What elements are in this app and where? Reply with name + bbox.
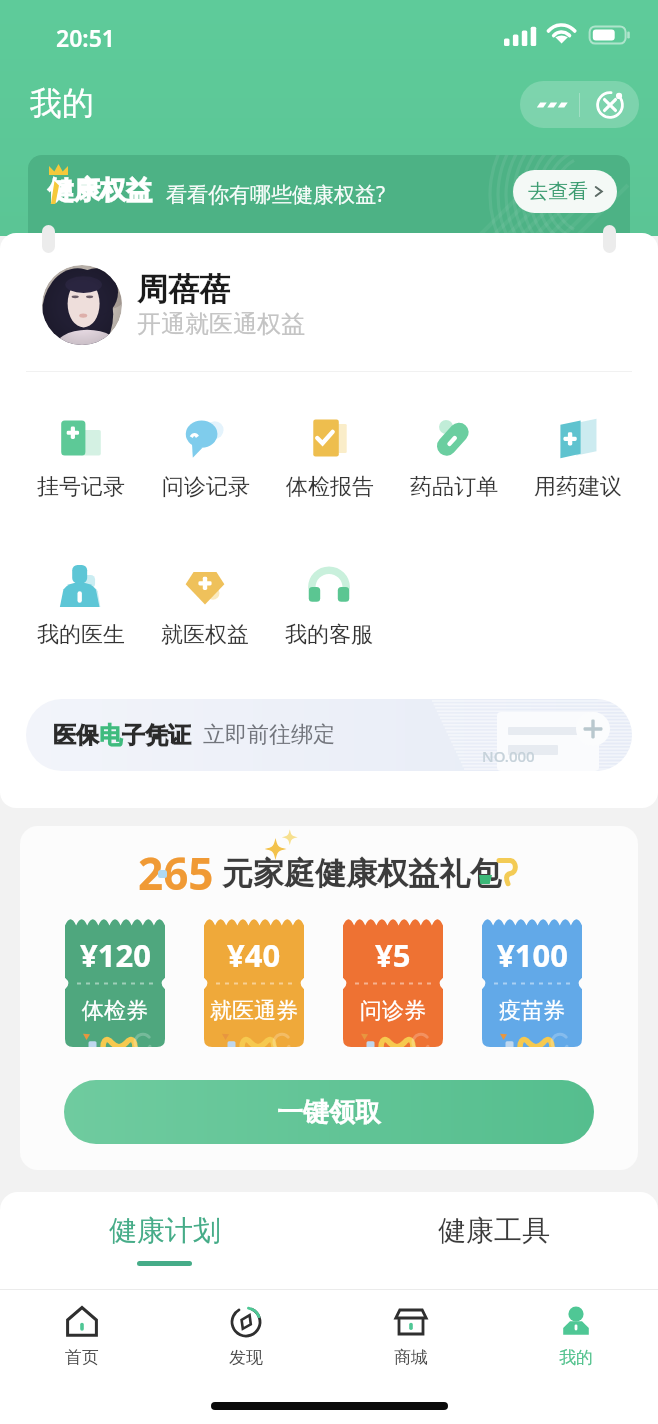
staticText: 周蓓蓓 bbox=[137, 270, 230, 309]
button[interactable]: 去查看 bbox=[528, 170, 607, 213]
staticText: 商城 bbox=[394, 1347, 428, 1368]
button[interactable]: Close mini program bbox=[580, 90, 639, 120]
button[interactable]: 医保 bbox=[26, 699, 632, 771]
staticText: 我的医生 bbox=[37, 621, 125, 649]
staticText: 用药建议 bbox=[534, 473, 622, 501]
staticText: 体检券 bbox=[82, 997, 148, 1025]
staticText: 体检报告 bbox=[286, 473, 374, 501]
button[interactable]: 发现 bbox=[164, 1290, 328, 1386]
button[interactable]: 一键领取 bbox=[64, 1080, 594, 1144]
button[interactable]: 药品订单 bbox=[392, 416, 516, 501]
button[interactable]: 用药建议 bbox=[516, 416, 640, 501]
staticText: 我的 bbox=[30, 83, 94, 123]
button[interactable]: ¥40 bbox=[204, 920, 304, 1047]
staticText: 健康工具 bbox=[438, 1213, 550, 1248]
staticText: 去查看 bbox=[528, 179, 588, 204]
button[interactable]: ¥120 bbox=[65, 920, 165, 1047]
button[interactable]: 健康权益 bbox=[28, 155, 630, 235]
button[interactable]: 商城 bbox=[328, 1290, 493, 1386]
staticText: 开通就医通权益 bbox=[137, 309, 305, 339]
button[interactable]: 健康计划 bbox=[0, 1192, 329, 1289]
staticText: 265 bbox=[138, 843, 214, 903]
button[interactable]: 周蓓蓓 bbox=[0, 255, 658, 355]
staticText: 健康计划 bbox=[109, 1213, 221, 1248]
button[interactable]: More options bbox=[520, 99, 579, 111]
button[interactable]: ¥5 bbox=[343, 920, 443, 1047]
staticText: 元家庭健康权益礼包 bbox=[222, 854, 501, 893]
staticText: 挂号记录 bbox=[37, 473, 125, 501]
button[interactable]: 问诊记录 bbox=[143, 416, 268, 501]
staticText: 就医权益 bbox=[161, 621, 249, 649]
button[interactable]: 体检报告 bbox=[268, 416, 392, 501]
button[interactable]: 我的医生 bbox=[18, 564, 143, 649]
staticText: 电 bbox=[99, 721, 122, 750]
staticText: 看看你有哪些健康权益? bbox=[166, 180, 386, 209]
staticText: ¥120 bbox=[80, 934, 151, 976]
staticText: 问诊记录 bbox=[162, 473, 250, 501]
staticText: 一键领取 bbox=[277, 1096, 381, 1129]
staticText: 我的客服 bbox=[285, 621, 373, 649]
staticText: 我的 bbox=[559, 1347, 593, 1368]
staticText: ¥100 bbox=[497, 934, 568, 976]
button[interactable]: 我的客服 bbox=[267, 564, 391, 649]
button[interactable]: 健康工具 bbox=[329, 1192, 658, 1289]
staticText: 就医通券 bbox=[210, 997, 298, 1025]
button[interactable]: ¥100 bbox=[482, 920, 582, 1047]
button[interactable]: 首页 bbox=[0, 1290, 164, 1386]
staticText: ¥40 bbox=[227, 934, 281, 976]
staticText: 药品订单 bbox=[410, 473, 498, 501]
staticText: 立即前往绑定 bbox=[203, 721, 335, 749]
staticText: 疫苗券 bbox=[499, 997, 565, 1025]
staticText: 发现 bbox=[229, 1347, 263, 1368]
button[interactable]: 挂号记录 bbox=[18, 416, 143, 501]
staticText: ¥5 bbox=[375, 934, 411, 976]
staticText: 健康权益 bbox=[48, 174, 152, 207]
staticText: NO.000 bbox=[482, 746, 535, 766]
staticText: 医保 bbox=[53, 721, 99, 750]
staticText: 子凭证 bbox=[122, 721, 191, 750]
staticText: 20:51 bbox=[56, 22, 115, 53]
button[interactable]: 我的 bbox=[493, 1290, 658, 1386]
staticText: 问诊券 bbox=[360, 997, 426, 1025]
button[interactable]: 就医权益 bbox=[143, 564, 267, 649]
staticText: 首页 bbox=[65, 1347, 99, 1368]
